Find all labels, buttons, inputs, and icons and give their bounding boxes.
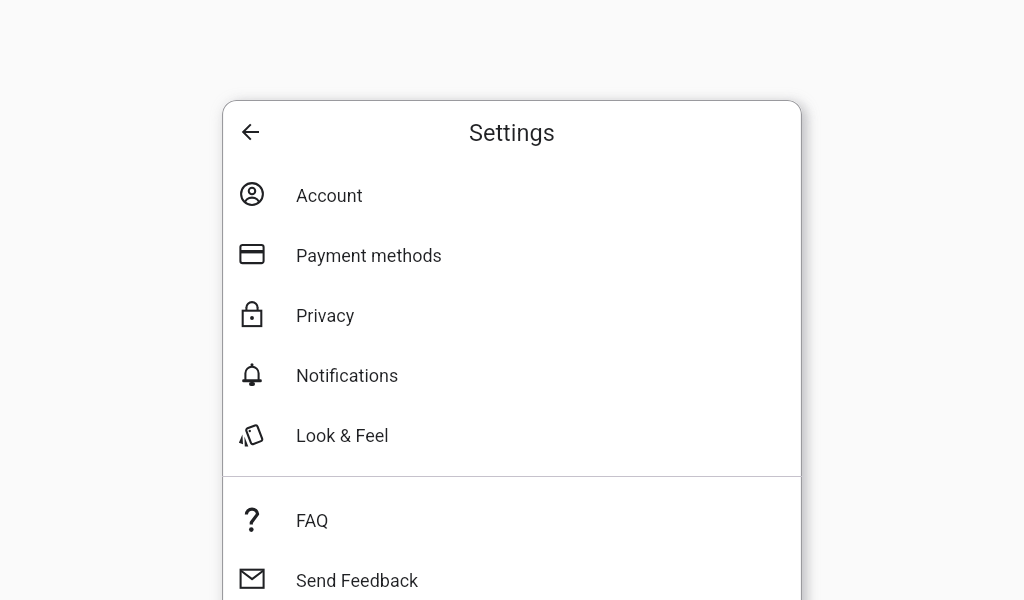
staticText: Payment methods: [296, 245, 442, 266]
staticText: FAQ: [296, 510, 329, 531]
staticText: Account: [296, 185, 363, 206]
staticText: Look & Feel: [296, 425, 389, 446]
button[interactable]: FAQ: [222, 490, 802, 550]
button[interactable]: Back: [227, 108, 275, 156]
staticText: Send Feedback: [296, 570, 419, 591]
button[interactable]: Send Feedback: [222, 550, 802, 600]
button[interactable]: Look & Feel: [222, 405, 802, 465]
button[interactable]: Account: [222, 165, 802, 225]
button[interactable]: Notifications: [222, 345, 802, 405]
button[interactable]: Privacy: [222, 285, 802, 345]
button[interactable]: Payment methods: [222, 225, 802, 285]
staticText: Privacy: [296, 305, 355, 326]
staticText: Notifications: [296, 365, 399, 386]
staticText: Settings: [469, 119, 555, 147]
